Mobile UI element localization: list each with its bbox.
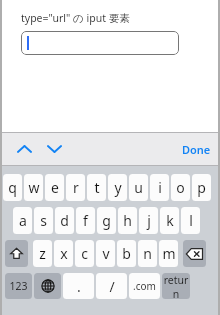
staticText: v [102, 244, 110, 263]
button[interactable]: r [66, 174, 85, 201]
button[interactable] [21, 31, 179, 55]
staticText: . [77, 277, 81, 296]
button[interactable]: l [181, 207, 200, 234]
staticText: d [60, 211, 69, 230]
button[interactable]: g [97, 207, 116, 234]
button[interactable]: . [63, 273, 94, 299]
button[interactable]: h [118, 207, 137, 234]
button[interactable]: o [171, 174, 190, 201]
button[interactable]: u [129, 174, 148, 201]
staticText: t [94, 178, 100, 197]
staticText: / [109, 277, 115, 296]
staticText: a [19, 211, 27, 230]
button[interactable]: f [76, 207, 95, 234]
button[interactable]: w [24, 174, 43, 201]
staticText: m [162, 244, 176, 263]
staticText: c [81, 244, 88, 263]
button[interactable]: m [159, 240, 178, 267]
button[interactable]: 123 [5, 273, 32, 299]
button[interactable]: t [87, 174, 106, 201]
button[interactable]: i [150, 174, 169, 201]
staticText: x [60, 244, 68, 263]
staticText: n [143, 244, 152, 263]
button[interactable]: v [96, 240, 115, 267]
button[interactable]: j [139, 207, 158, 234]
button[interactable]: x [54, 240, 73, 267]
button[interactable]: z [33, 240, 52, 267]
staticText: b [122, 244, 131, 263]
staticText: r [73, 178, 79, 197]
button[interactable]: s [34, 207, 53, 234]
staticText: f [83, 211, 88, 230]
button[interactable]: k [160, 207, 179, 234]
button[interactable]: d [55, 207, 74, 234]
staticText: return [162, 273, 190, 299]
staticText: i [158, 178, 162, 197]
staticText: k [166, 211, 174, 230]
button[interactable]: a [13, 207, 32, 234]
staticText: l [189, 211, 193, 230]
staticText: 123 [9, 279, 28, 293]
staticText: .com [133, 279, 156, 293]
button[interactable]: / [96, 273, 127, 299]
button[interactable]: n [138, 240, 157, 267]
staticText: p [197, 178, 206, 197]
button[interactable]: b [117, 240, 136, 267]
button[interactable]: Shift [5, 240, 28, 267]
button[interactable]: e [45, 174, 64, 201]
staticText: z [39, 244, 46, 263]
staticText: s [40, 211, 47, 230]
button[interactable]: Backspace [183, 240, 206, 267]
button[interactable]: Change keyboard [34, 273, 61, 299]
button[interactable]: Done [175, 137, 218, 162]
button[interactable]: return [162, 273, 190, 299]
staticText: h [123, 211, 132, 230]
staticText: j [147, 211, 151, 230]
staticText: q [8, 178, 17, 197]
staticText: w [28, 178, 40, 197]
staticText: y [114, 178, 122, 197]
staticText: g [102, 211, 111, 230]
button[interactable]: q [3, 174, 22, 201]
button[interactable]: .com [129, 273, 160, 299]
button[interactable]: c [75, 240, 94, 267]
staticText: type="url" の iput 要素 [21, 11, 130, 25]
button[interactable]: Next field [42, 136, 66, 162]
staticText: o [176, 178, 185, 197]
staticText: e [51, 178, 59, 197]
staticText: u [134, 178, 143, 197]
staticText: Done [182, 142, 211, 157]
button[interactable]: y [108, 174, 127, 201]
button[interactable]: Previous field [12, 136, 36, 162]
button[interactable]: p [192, 174, 211, 201]
